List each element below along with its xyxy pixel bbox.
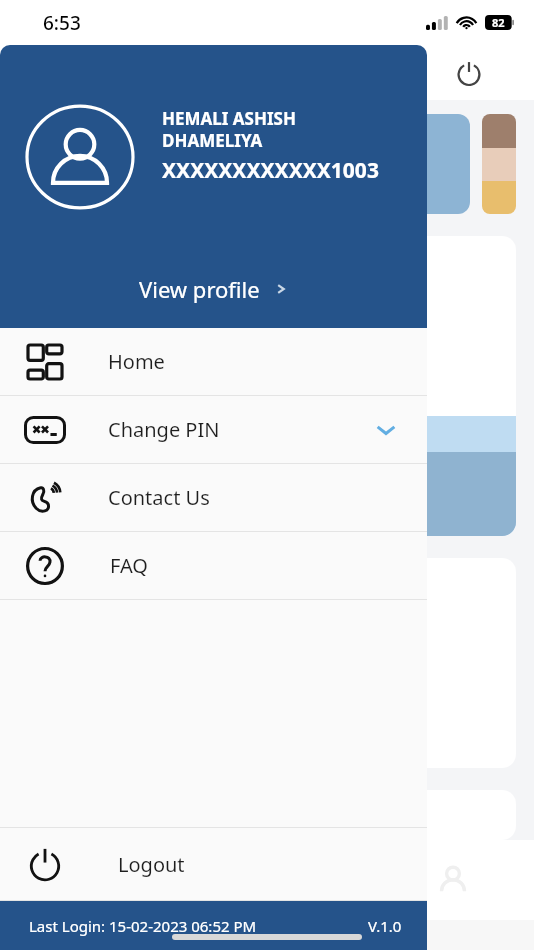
button[interactable]: Raj Bank (18, 114, 470, 214)
button[interactable]: ds (18, 558, 516, 768)
staticText: Contact Us (108, 484, 210, 511)
staticText: Last Login: 15-02-2023 06:52 PM (29, 916, 257, 936)
staticText: 6:53 (43, 10, 81, 36)
button[interactable]: View profile (125, 268, 302, 310)
button[interactable]: Logout (450, 54, 488, 92)
button[interactable]: FAQ (0, 532, 427, 599)
staticText: Home (108, 348, 165, 375)
button[interactable]: Contact Us (0, 464, 427, 531)
button[interactable] (18, 790, 516, 840)
staticText: V.1.0 (368, 916, 402, 936)
button[interactable]: k of Rajkot Ltd. (18, 236, 516, 536)
staticText: View profile (139, 274, 260, 304)
staticText: XXXXXXXXXXXX1003 (162, 156, 379, 185)
button[interactable]: Profile (432, 859, 474, 901)
staticText: 82 (492, 15, 505, 30)
staticText: Logout (118, 851, 185, 878)
staticText: HEMALI ASHISH DHAMELIYA (162, 107, 296, 152)
staticText: Change PIN (108, 416, 220, 443)
staticText: ds (22, 582, 39, 602)
button[interactable]: Change PIN (0, 396, 427, 463)
button[interactable]: Home (0, 328, 427, 395)
staticText: Raj Bank (232, 175, 257, 183)
button[interactable]: Logout (0, 828, 427, 900)
other: Profile avatar (27, 104, 133, 210)
staticText: FAQ (110, 552, 148, 579)
